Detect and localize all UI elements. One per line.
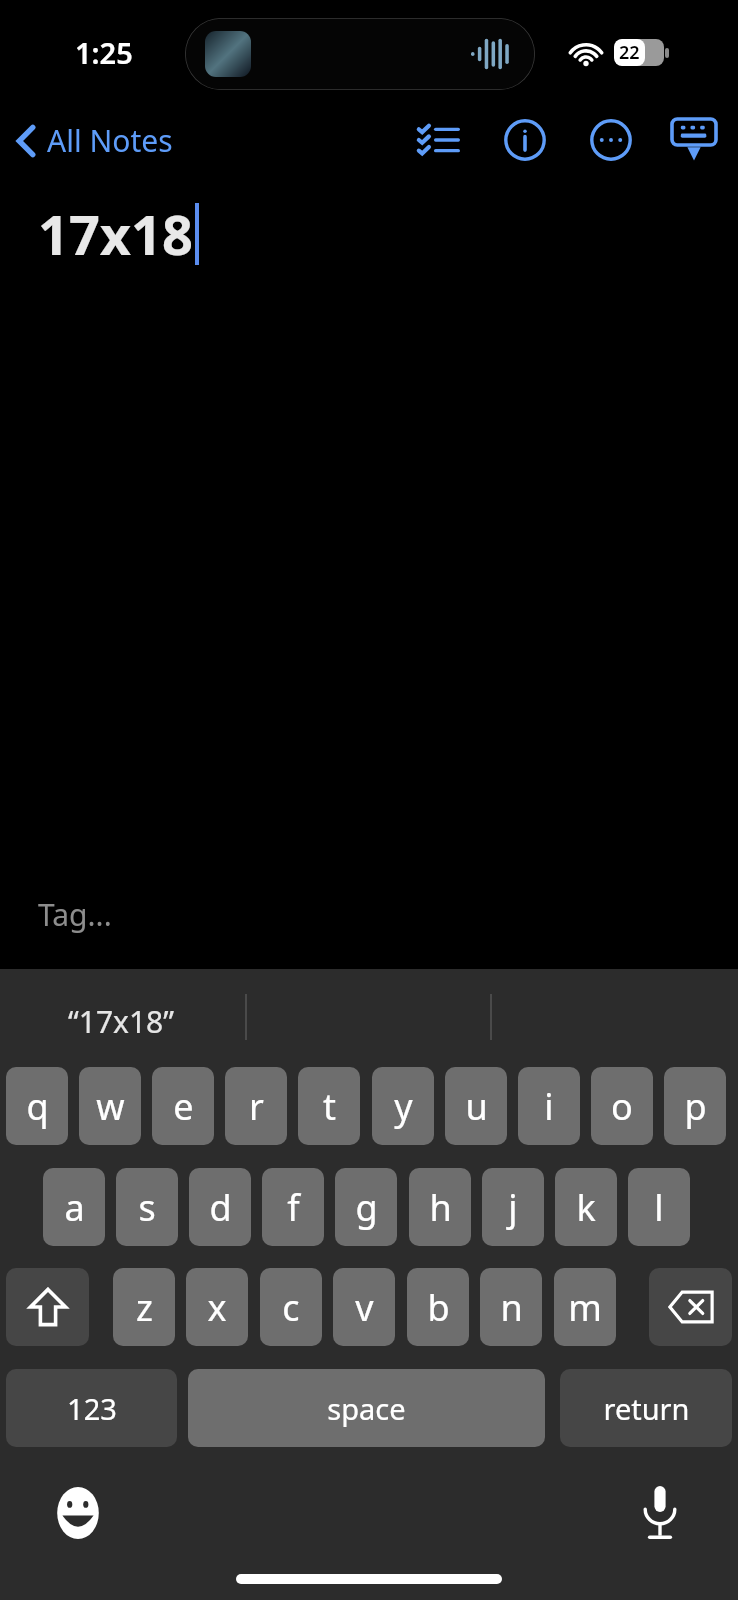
staticText: n [500, 1283, 523, 1332]
button[interactable]: m [554, 1268, 616, 1346]
staticText: q [26, 1082, 49, 1131]
button[interactable]: q [6, 1067, 68, 1145]
button[interactable]: 17x18 [38, 197, 199, 271]
button[interactable]: k [555, 1168, 617, 1246]
button[interactable]: o [591, 1067, 653, 1145]
button[interactable]: t [298, 1067, 360, 1145]
staticText: return [603, 1389, 690, 1428]
staticText: 17x18 [38, 197, 193, 271]
button[interactable]: y [372, 1067, 434, 1145]
button[interactable]: b [407, 1268, 469, 1346]
button[interactable]: e [152, 1067, 214, 1145]
staticText: e [173, 1082, 194, 1131]
button[interactable]: Tag... [38, 894, 112, 935]
button[interactable]: c [260, 1268, 322, 1346]
button[interactable]: n [480, 1268, 542, 1346]
staticText: u [465, 1082, 488, 1131]
staticText: space [327, 1389, 406, 1428]
button[interactable]: f [262, 1168, 324, 1246]
button[interactable]: h [409, 1168, 471, 1246]
staticText: f [287, 1183, 300, 1232]
staticText: p [684, 1082, 707, 1131]
button[interactable]: Emoji [46, 1481, 110, 1545]
staticText: k [576, 1183, 596, 1232]
staticText: w [96, 1082, 125, 1131]
staticText: z [136, 1283, 153, 1332]
button[interactable]: More options [568, 107, 654, 173]
staticText: 22 [619, 40, 640, 65]
button[interactable]: Backspace [649, 1268, 732, 1346]
staticText: o [611, 1082, 633, 1131]
staticText: l [654, 1183, 664, 1232]
staticText: s [138, 1183, 156, 1232]
button[interactable]: u [445, 1067, 507, 1145]
staticText: 123 [67, 1389, 117, 1428]
staticText: d [209, 1183, 232, 1232]
staticText: t [323, 1082, 336, 1131]
staticText: i [544, 1082, 554, 1131]
staticText: j [508, 1183, 518, 1232]
staticText: r [249, 1082, 264, 1131]
button[interactable]: s [116, 1168, 178, 1246]
button[interactable]: v [333, 1268, 395, 1346]
staticText: b [427, 1283, 450, 1332]
staticText: x [207, 1283, 227, 1332]
button[interactable]: Info [482, 107, 568, 173]
button[interactable]: l [628, 1168, 690, 1246]
button[interactable]: space [188, 1369, 545, 1447]
button[interactable]: Hide keyboard [654, 107, 738, 173]
button[interactable]: “17x18” [68, 1001, 175, 1042]
staticText: m [568, 1283, 602, 1332]
button[interactable]: All Notes [0, 114, 185, 167]
staticText: g [355, 1183, 378, 1232]
staticText: 1:25 [75, 33, 133, 72]
button[interactable]: p [664, 1067, 726, 1145]
button[interactable]: r [225, 1067, 287, 1145]
button[interactable]: d [189, 1168, 251, 1246]
button[interactable]: a [43, 1168, 105, 1246]
staticText: y [394, 1082, 413, 1131]
button[interactable]: i [518, 1067, 580, 1145]
button[interactable]: 123 [6, 1369, 177, 1447]
button[interactable]: g [335, 1168, 397, 1246]
button[interactable]: return [560, 1369, 732, 1447]
staticText: v [355, 1283, 374, 1332]
button[interactable]: Checklist [396, 112, 482, 168]
button[interactable]: w [79, 1067, 141, 1145]
staticText: All Notes [47, 120, 173, 161]
button[interactable]: Shift [6, 1268, 89, 1346]
button[interactable]: j [482, 1168, 544, 1246]
staticText: h [429, 1183, 452, 1232]
staticText: c [282, 1283, 300, 1332]
button[interactable]: Dictation [628, 1481, 692, 1545]
button[interactable]: z [113, 1268, 175, 1346]
staticText: a [64, 1183, 85, 1232]
button[interactable]: x [186, 1268, 248, 1346]
